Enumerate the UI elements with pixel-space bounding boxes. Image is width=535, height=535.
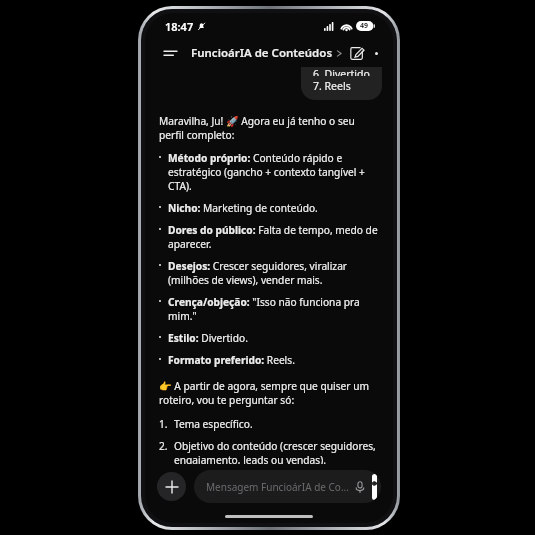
- button[interactable]: Mensagem FuncioárIA de Co...: [194, 470, 381, 503]
- staticText: Estilo: Divertido.: [168, 331, 248, 345]
- staticText: Desejos: Crescer seguidores, viralizar (…: [168, 259, 378, 287]
- staticText: 49: [360, 21, 369, 31]
- staticText: Nicho: Marketing de conteúdo.: [168, 201, 318, 215]
- staticText: Maravilha, Ju! 🚀 Agora eu já tenho o seu…: [159, 114, 378, 142]
- staticText: Método próprio: Conteúdo rápido e estrat…: [168, 151, 378, 193]
- button[interactable]: Voice mode: [372, 474, 377, 500]
- button[interactable]: Voice input: [349, 476, 371, 498]
- staticText: 7. Reels: [313, 79, 351, 93]
- staticText: Dores do público: Falta de tempo, medo d…: [168, 223, 378, 251]
- button[interactable]: Add attachment: [157, 472, 186, 501]
- staticText: 2.: [159, 439, 168, 453]
- button[interactable]: More options: [375, 41, 379, 65]
- staticText: 6. Divertido: [313, 67, 370, 76]
- staticText: Formato preferido: Reels.: [168, 353, 295, 367]
- staticText: 👉 A partir de agora, sempre que quiser u…: [159, 379, 378, 407]
- button[interactable]: New chat: [345, 41, 369, 65]
- staticText: Mensagem FuncioárIA de Co...: [206, 480, 349, 494]
- button[interactable]: 6. Divertido: [301, 67, 382, 100]
- staticText: Tema específico.: [174, 417, 253, 431]
- staticText: 18:47: [165, 19, 194, 34]
- staticText: Crença/objeção: "Isso não funciona pra m…: [168, 295, 378, 323]
- staticText: 1.: [159, 417, 168, 431]
- button[interactable]: Menu: [159, 42, 181, 64]
- staticText: FuncioárIA de Conteúdos: [191, 45, 333, 61]
- button[interactable]: FuncioárIA de Conteúdos: [189, 43, 345, 63]
- staticText: Objetivo do conteúdo (crescer seguidores…: [174, 439, 378, 464]
